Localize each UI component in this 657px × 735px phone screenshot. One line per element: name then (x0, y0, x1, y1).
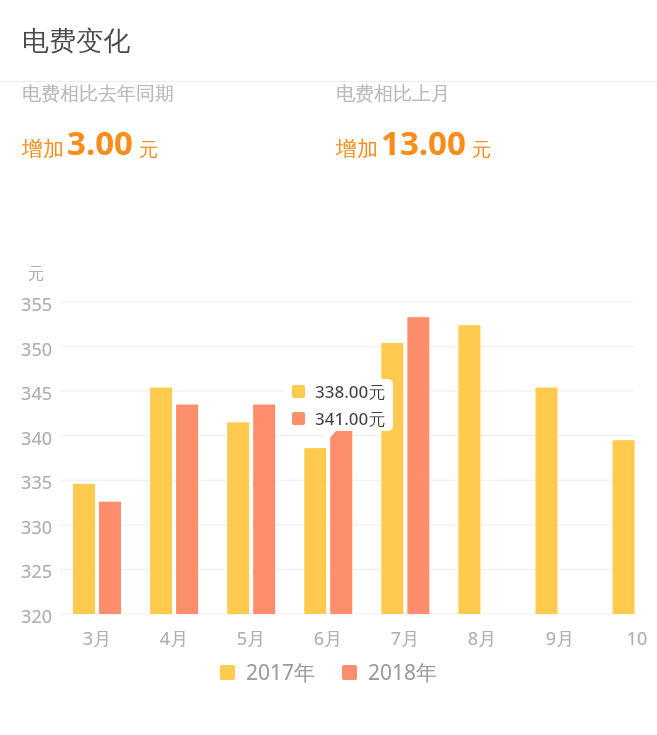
staticText: 330 (10, 515, 52, 540)
staticText: 338.00元 (315, 380, 386, 403)
button[interactable]: 电费相比上月 (336, 82, 657, 165)
staticText: 355 (10, 292, 52, 317)
staticText: 7月 (375, 626, 435, 651)
staticText: 增加 (22, 136, 64, 162)
staticText: 电费变化 (22, 24, 130, 58)
staticText: 13.00 (381, 120, 466, 165)
staticText: 8月 (452, 626, 512, 651)
staticText: 元 (139, 138, 158, 162)
staticText: 元 (472, 138, 491, 162)
staticText: 335 (10, 470, 52, 495)
button[interactable]: 2017年 (220, 658, 438, 687)
staticText: 3月 (67, 626, 127, 651)
other: 2017年 (220, 665, 235, 680)
staticText: 电费相比去年同期 (22, 82, 174, 106)
staticText: 341.00元 (315, 407, 386, 430)
staticText: 电费相比上月 (336, 82, 450, 106)
staticText: 345 (10, 381, 52, 406)
staticText: 320 (10, 604, 52, 629)
staticText: 2018年 (368, 658, 438, 687)
staticText: 9月 (530, 626, 590, 651)
button[interactable]: 电费变化 (0, 0, 657, 81)
staticText: 5月 (221, 626, 281, 651)
staticText: 3.00 (67, 120, 133, 165)
staticText: 2017年 (246, 658, 316, 687)
staticText: 10 (607, 626, 657, 651)
staticText: 增加 (336, 136, 378, 162)
button[interactable]: 338.00元 (284, 379, 393, 431)
staticText: 元 (28, 264, 44, 284)
other: 2018年 (342, 665, 357, 680)
staticText: 6月 (298, 626, 358, 651)
button[interactable]: 电费相比去年同期 (22, 82, 328, 165)
staticText: 350 (10, 337, 52, 362)
staticText: 325 (10, 559, 52, 584)
staticText: 340 (10, 426, 52, 451)
staticText: 4月 (144, 626, 204, 651)
